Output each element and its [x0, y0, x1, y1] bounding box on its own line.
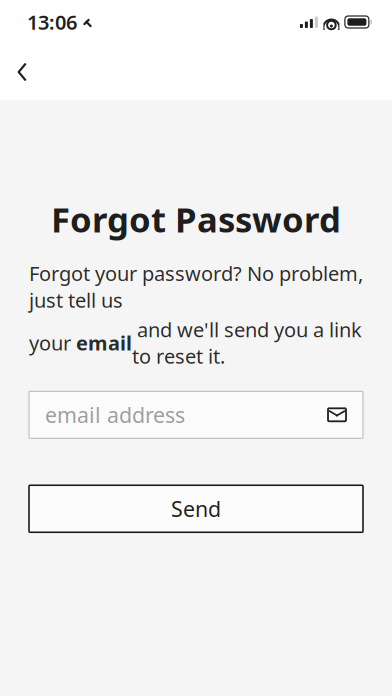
staticText: Send: [171, 495, 221, 523]
staticText: Forgot your password? No problem, just t…: [29, 260, 363, 313]
button[interactable]: email address: [29, 391, 363, 438]
button[interactable]: Send: [29, 485, 363, 532]
staticText: 13:06: [27, 9, 77, 35]
button[interactable]: Back: [0, 50, 44, 94]
staticText: email address: [45, 401, 185, 429]
staticText: email: [76, 329, 132, 356]
staticText: your: [29, 329, 76, 356]
staticText: Forgot Password: [51, 196, 341, 242]
staticText: and we'll send you a link to reset it.: [132, 316, 362, 369]
